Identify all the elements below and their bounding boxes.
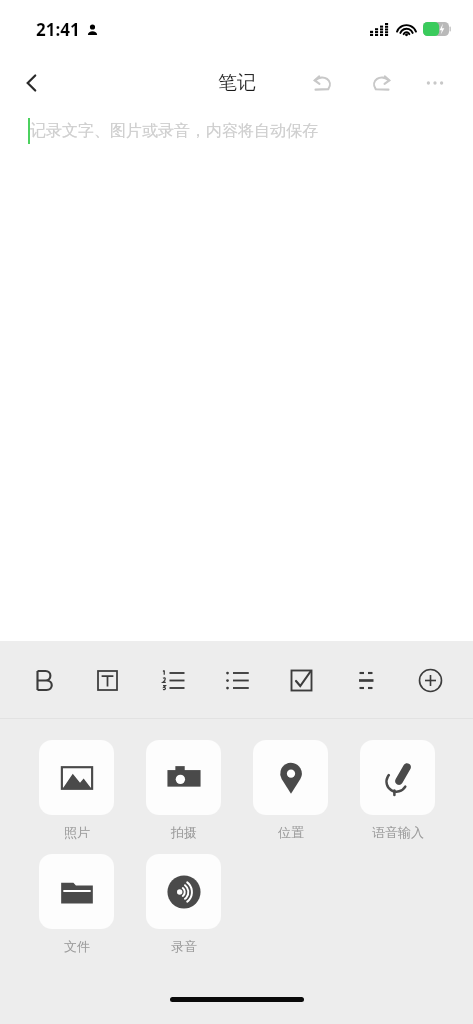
staticText: 记录文字、图片或录音，内容将自动保存	[30, 121, 318, 141]
button[interactable]: Bulleted list	[215, 658, 259, 702]
button[interactable]: Record audio	[146, 854, 221, 954]
staticText: 21:41	[36, 18, 80, 41]
staticText: 拍摄	[171, 824, 197, 840]
staticText: 文件	[64, 938, 90, 954]
staticText: 笔记	[218, 71, 256, 95]
button[interactable]: Camera	[146, 740, 221, 840]
button[interactable]: Files	[39, 854, 114, 954]
button[interactable]: Voice input	[360, 740, 435, 840]
button[interactable]: Text style	[85, 658, 129, 702]
staticText: 照片	[64, 824, 90, 840]
staticText: 语音输入	[372, 824, 424, 840]
button[interactable]: Location	[253, 740, 328, 840]
button[interactable]: Undo	[301, 61, 345, 105]
button[interactable]: Photos	[39, 740, 114, 840]
button[interactable]: Line spacing	[344, 658, 388, 702]
button[interactable]: Back	[10, 61, 54, 105]
staticText: 录音	[171, 938, 197, 954]
button[interactable]: Numbered list	[150, 658, 194, 702]
button[interactable]: Checklist	[279, 658, 323, 702]
button[interactable]: Redo	[359, 61, 403, 105]
button[interactable]: Add	[408, 658, 452, 702]
button[interactable]: More options	[413, 61, 457, 105]
staticText: 位置	[278, 824, 304, 840]
button[interactable]: Bold	[21, 658, 65, 702]
